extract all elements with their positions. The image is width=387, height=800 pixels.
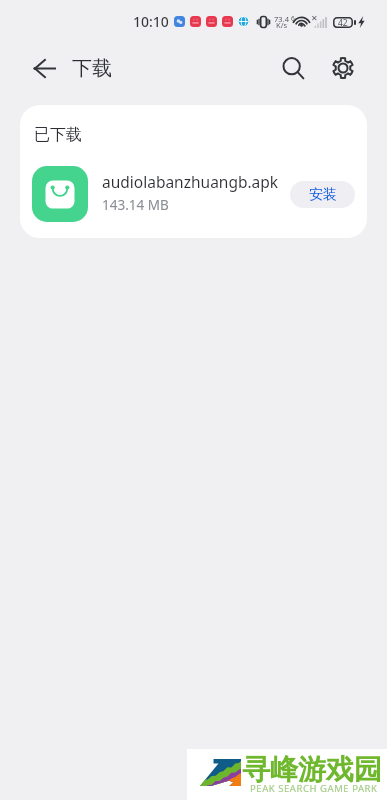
- staticText: 已下载: [34, 125, 82, 145]
- staticText: 安装: [309, 186, 337, 204]
- staticText: 下载: [72, 56, 112, 81]
- button[interactable]: Search: [271, 46, 315, 90]
- button[interactable]: 安装: [290, 181, 355, 208]
- staticText: PEAK SEARCH GAME PARK: [250, 782, 378, 795]
- staticText: 73.4 K/s: [274, 14, 289, 30]
- staticText: 42: [338, 17, 348, 28]
- staticText: ✕: [311, 14, 318, 23]
- staticText: 143.14 MB: [102, 196, 169, 214]
- staticText: audiolabanzhuangb.apk: [102, 171, 279, 192]
- staticText: 寻峰游戏园: [242, 752, 382, 787]
- button[interactable]: Back: [22, 46, 66, 90]
- staticText: 6: [291, 14, 295, 23]
- button[interactable]: 下载: [72, 46, 112, 90]
- button[interactable]: audiolabanzhuangb.apk: [32, 166, 355, 222]
- button[interactable]: Settings: [321, 46, 365, 90]
- staticText: 10:10: [133, 12, 169, 31]
